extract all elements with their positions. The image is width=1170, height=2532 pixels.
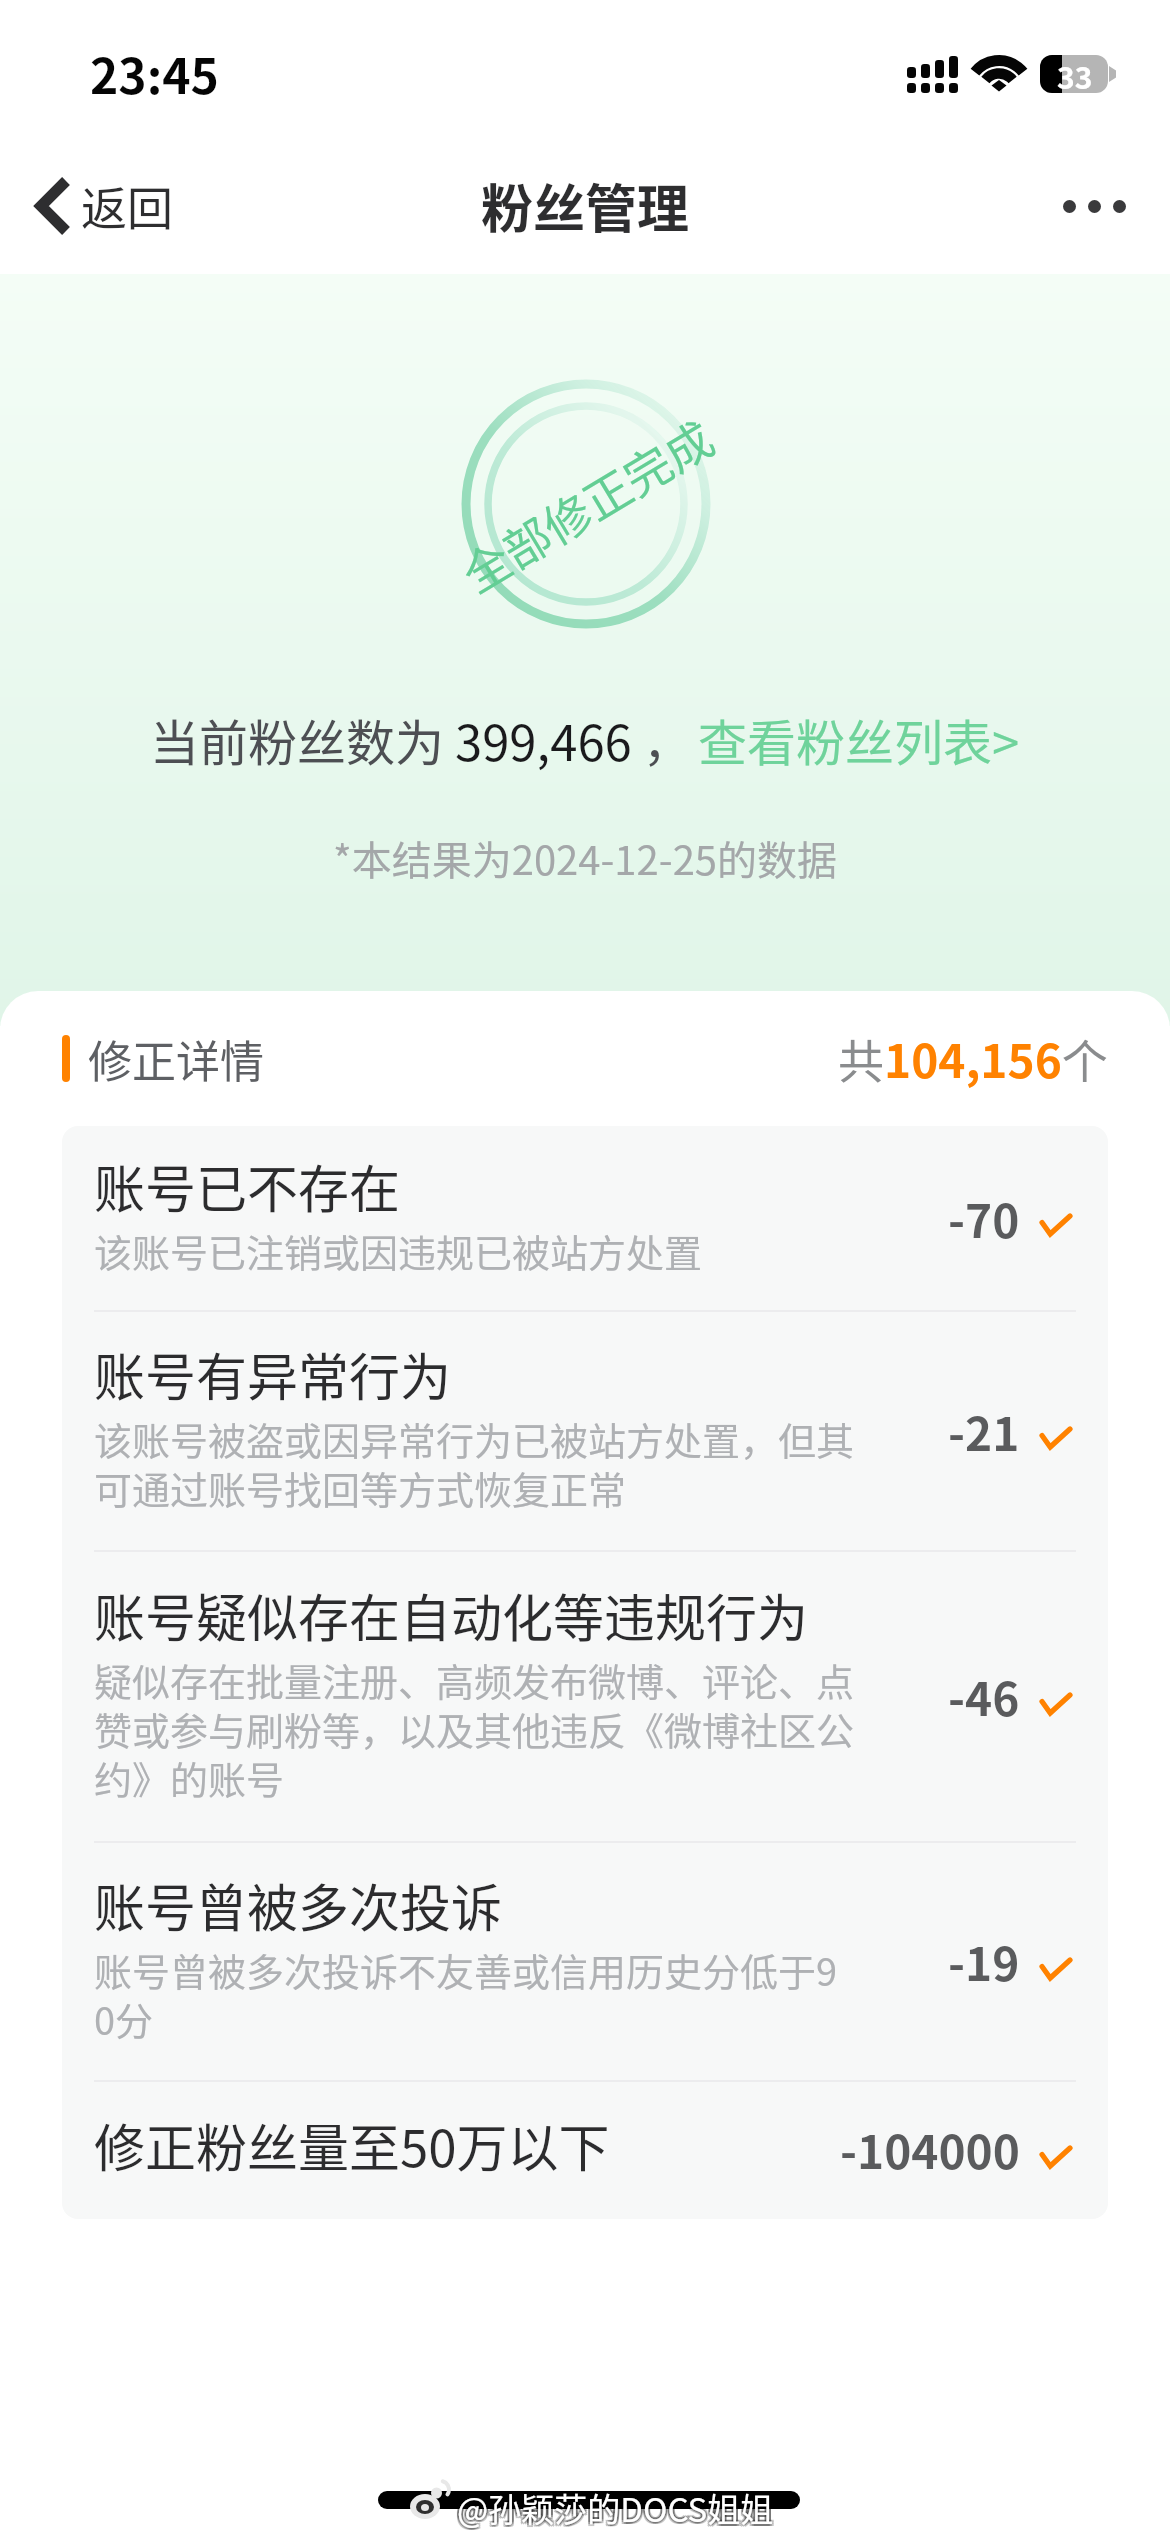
staticText: *本结果为2024-12-25的数据 (333, 829, 838, 887)
staticText: @孙颖莎的DOCS姐姐 (455, 2484, 772, 2528)
staticText: 账号疑似存在自动化等违规行为 (94, 1578, 809, 1652)
staticText: -104000 (840, 2116, 1020, 2183)
staticText: 返回 (81, 172, 173, 239)
staticText: 33 (1057, 54, 1093, 92)
button[interactable]: More options (1033, 165, 1170, 246)
staticText: 全部修正完成 (448, 402, 724, 606)
staticText: -70 (948, 1185, 1020, 1252)
staticText: 修正详情 (88, 1027, 264, 1091)
staticText: @孙颖莎的DOCS姐姐 (459, 2484, 776, 2528)
button[interactable]: 返回 (0, 156, 197, 255)
staticText: 该账号被盗或因异常行为已被站方处置，但其 可通过账号找回等方式恢复正常 (94, 1411, 855, 1515)
staticText: 修正粉丝量至50万以下 (94, 2108, 610, 2182)
staticText: 该账号已注销或因违规已被站方处置 (94, 1223, 703, 1278)
button[interactable]: 账号疑似存在自动化等违规行为 (62, 1552, 1108, 1841)
staticText: @孙颖莎的DOCS姐姐 (459, 2486, 776, 2530)
staticText: -19 (948, 1928, 1020, 1995)
staticText: 共104,156个 (838, 1025, 1108, 1092)
staticText: @孙颖莎的DOCS姐姐 (455, 2482, 772, 2526)
staticText: @孙颖莎的DOCS姐姐 (457, 2482, 774, 2526)
button[interactable]: 账号曾被多次投诉 (62, 1843, 1108, 2080)
staticText: 账号曾被多次投诉不友善或信用历史分低于9 0分 (94, 1942, 838, 2046)
staticText: 账号曾被多次投诉 (94, 1868, 503, 1942)
button[interactable]: 账号已不存在 (62, 1126, 1108, 1310)
staticText: 粉丝管理 (481, 168, 690, 243)
staticText: @孙颖莎的DOCS姐姐 (457, 2486, 774, 2530)
staticText: -21 (948, 1398, 1020, 1465)
staticText: 账号已不存在 (94, 1149, 401, 1223)
button[interactable]: 账号有异常行为 (62, 1312, 1108, 1550)
staticText: 疑似存在批量注册、高频发布微博、评论、点 赞或参与刷粉等，以及其他违反《微博社区… (94, 1652, 855, 1805)
staticText: 当前粉丝数为 399,466 ， (150, 704, 692, 775)
button[interactable]: 修正粉丝量至50万以下 (62, 2082, 1108, 2217)
button[interactable]: 查看粉丝列表> (692, 704, 1020, 775)
staticText: -46 (948, 1663, 1020, 1730)
staticText: 账号有异常行为 (94, 1337, 452, 1411)
staticText: @孙颖莎的DOCS姐姐 (455, 2486, 772, 2530)
staticText: 23:45 (90, 38, 219, 108)
staticText: @孙颖莎的DOCS姐姐 (459, 2482, 776, 2526)
staticText: 查看粉丝列表> (698, 704, 1020, 775)
staticText: @孙颖莎的DOCS姐姐 (457, 2484, 774, 2528)
